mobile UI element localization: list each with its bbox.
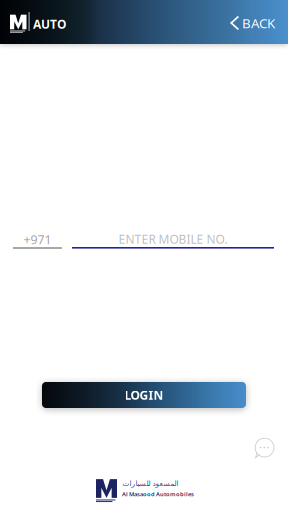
button[interactable]: BACK <box>225 6 280 40</box>
staticText: +971 <box>23 231 51 248</box>
button[interactable]: Chat support <box>254 438 275 459</box>
staticText: AUTO <box>33 16 66 32</box>
button[interactable]: LOGIN <box>42 382 246 408</box>
staticText: ENTER MOBILE NO. <box>118 231 227 247</box>
staticText: Al Masaood Automobiles <box>122 490 194 498</box>
staticText: المسعود للسيارات <box>122 479 178 488</box>
staticText: LOGIN <box>124 387 163 403</box>
staticText: BACK <box>242 14 275 32</box>
